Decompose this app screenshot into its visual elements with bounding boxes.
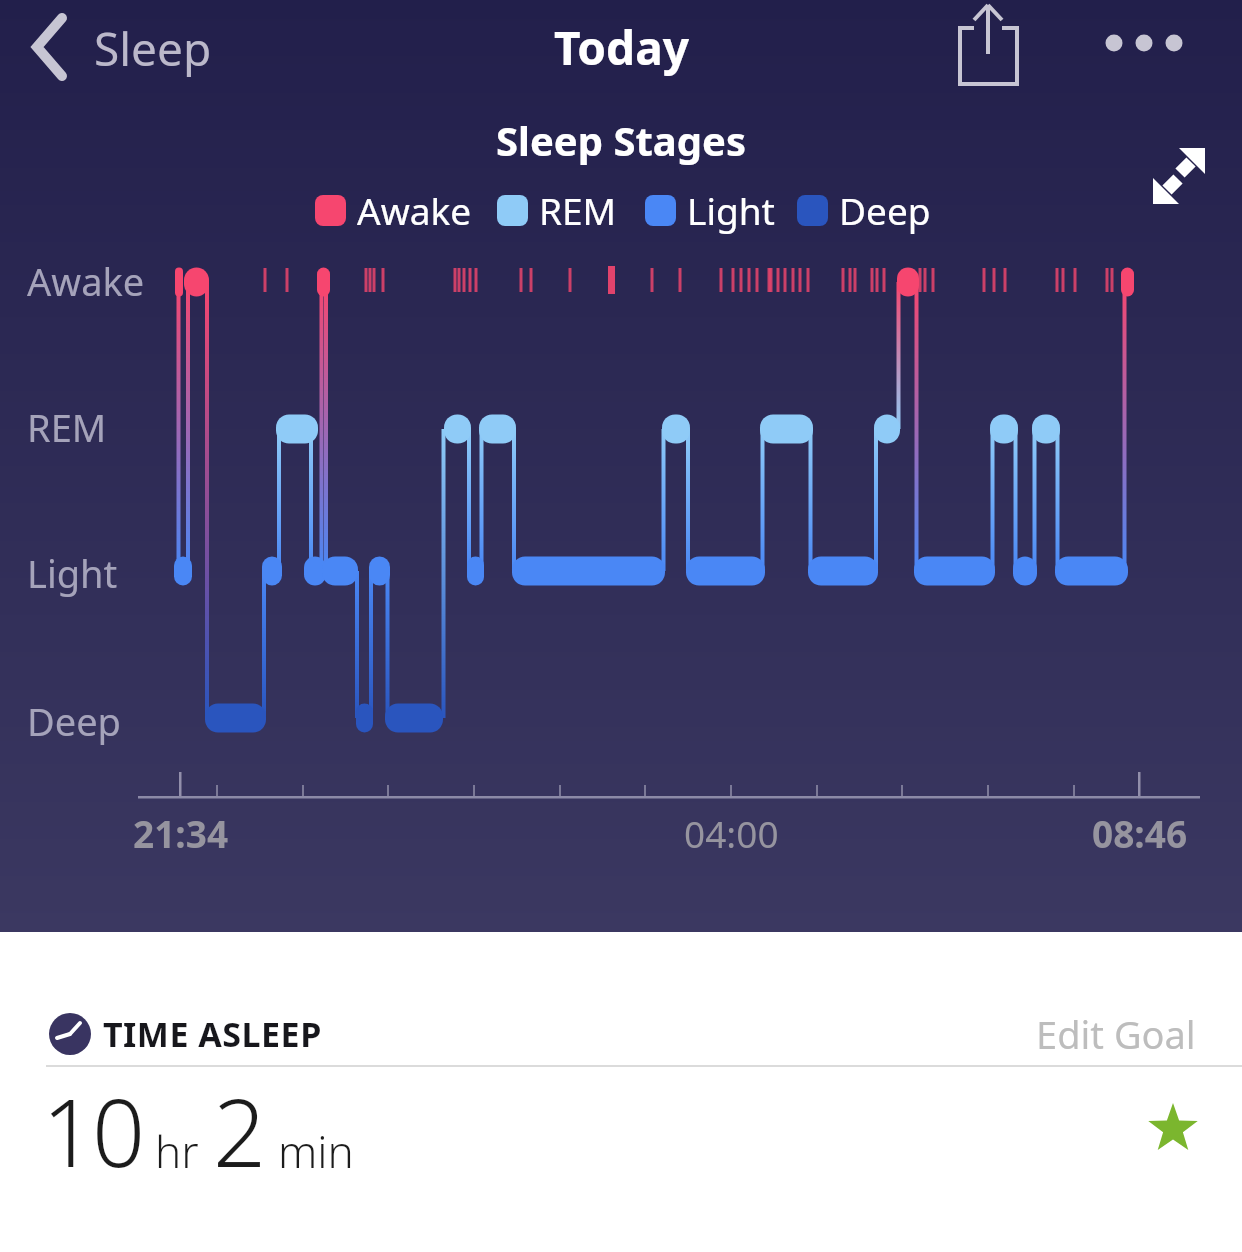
button[interactable] (940, 0, 1036, 100)
staticText: Awake (27, 255, 145, 307)
staticText: Awake (357, 185, 472, 235)
staticText: 21:34 (133, 808, 229, 858)
staticText: min (278, 1121, 354, 1181)
staticText: hr (155, 1121, 199, 1181)
staticText: Deep (839, 185, 931, 235)
staticText: Light (27, 547, 118, 599)
button[interactable]: 10 (42, 1068, 354, 1195)
staticText: 04:00 (684, 808, 779, 858)
staticText: 08:46 (1092, 808, 1188, 858)
button[interactable]: Sleep (30, 8, 212, 88)
button[interactable] (1092, 12, 1192, 72)
staticText: Sleep (94, 17, 212, 80)
button[interactable] (40, 1002, 1220, 1066)
staticText: Edit Goal (1036, 1008, 1196, 1060)
staticText: Light (687, 185, 775, 235)
staticText: REM (27, 401, 107, 453)
staticText: Today (554, 16, 689, 79)
staticText: 2 (213, 1068, 264, 1195)
staticText: TIME ASLEEP (103, 1011, 322, 1057)
staticText: Deep (27, 695, 121, 747)
button[interactable]: Edit Goal (896, 994, 1196, 1074)
staticText: REM (539, 185, 617, 235)
staticText: 10 (42, 1068, 143, 1195)
staticText: Sleep Stages (496, 113, 746, 167)
button[interactable] (1140, 136, 1216, 216)
